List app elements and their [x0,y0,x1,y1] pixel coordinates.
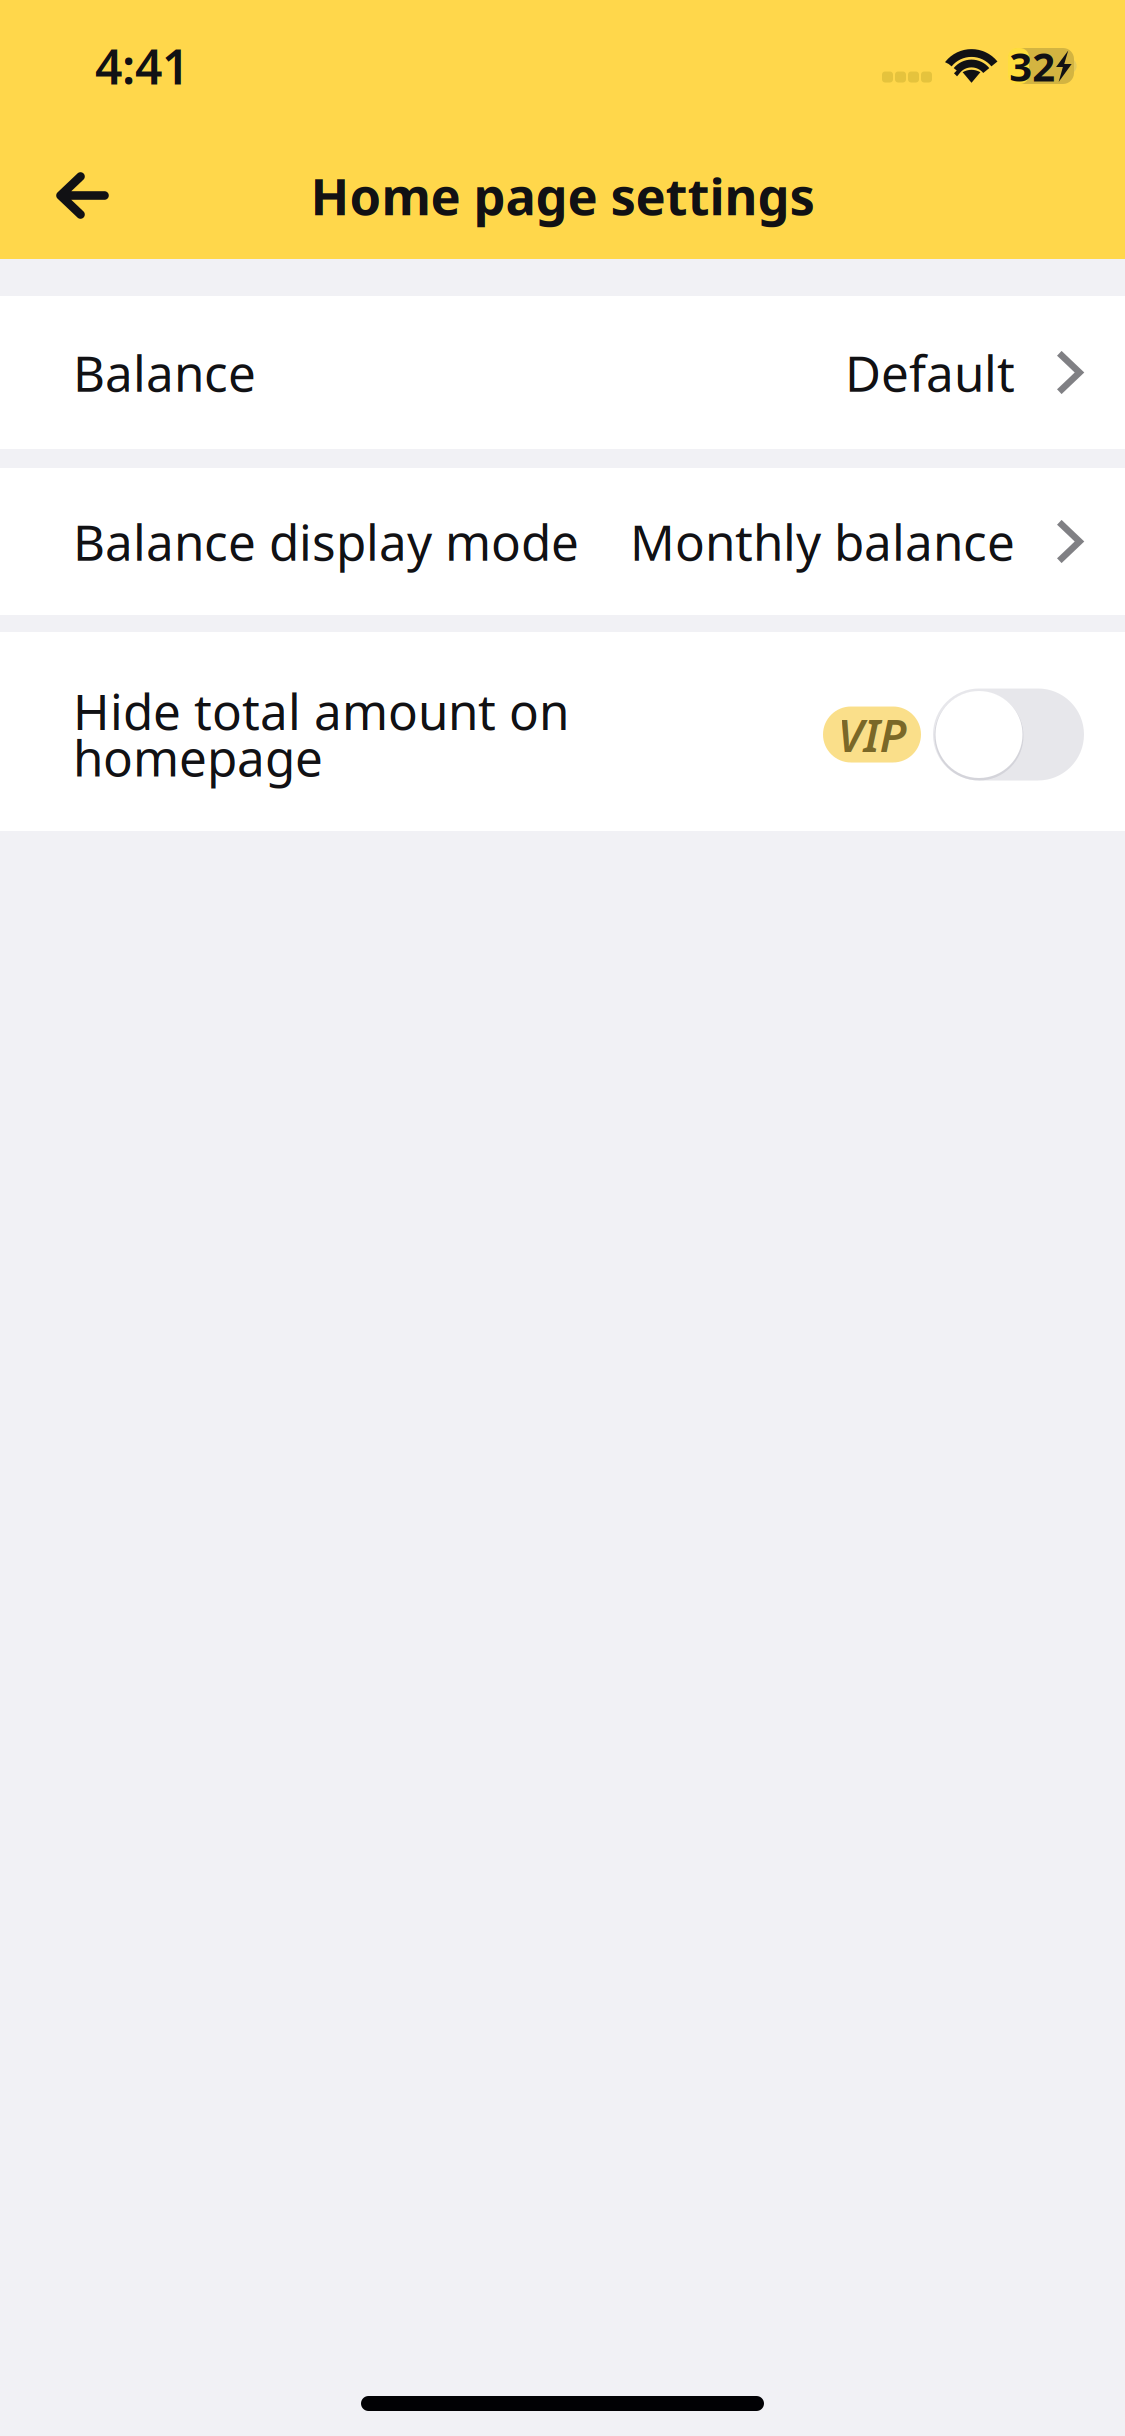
staticText: Balance [73,340,256,405]
staticText: Default [845,340,1015,405]
staticText: Monthly balance [630,509,1015,574]
staticText: 4:41 [95,34,189,98]
button[interactable]: Hide total amount on homepage [0,632,1125,831]
staticText: VIP [837,704,906,765]
staticText: 32 [1009,39,1055,92]
button[interactable]: Balance [0,296,1125,449]
staticText: Home page settings [310,162,814,229]
button[interactable]: Balance display mode [0,468,1125,615]
staticText: Hide total amount on homepage [73,678,569,790]
staticText: Balance display mode [73,509,579,574]
button[interactable]: Back [0,132,164,259]
